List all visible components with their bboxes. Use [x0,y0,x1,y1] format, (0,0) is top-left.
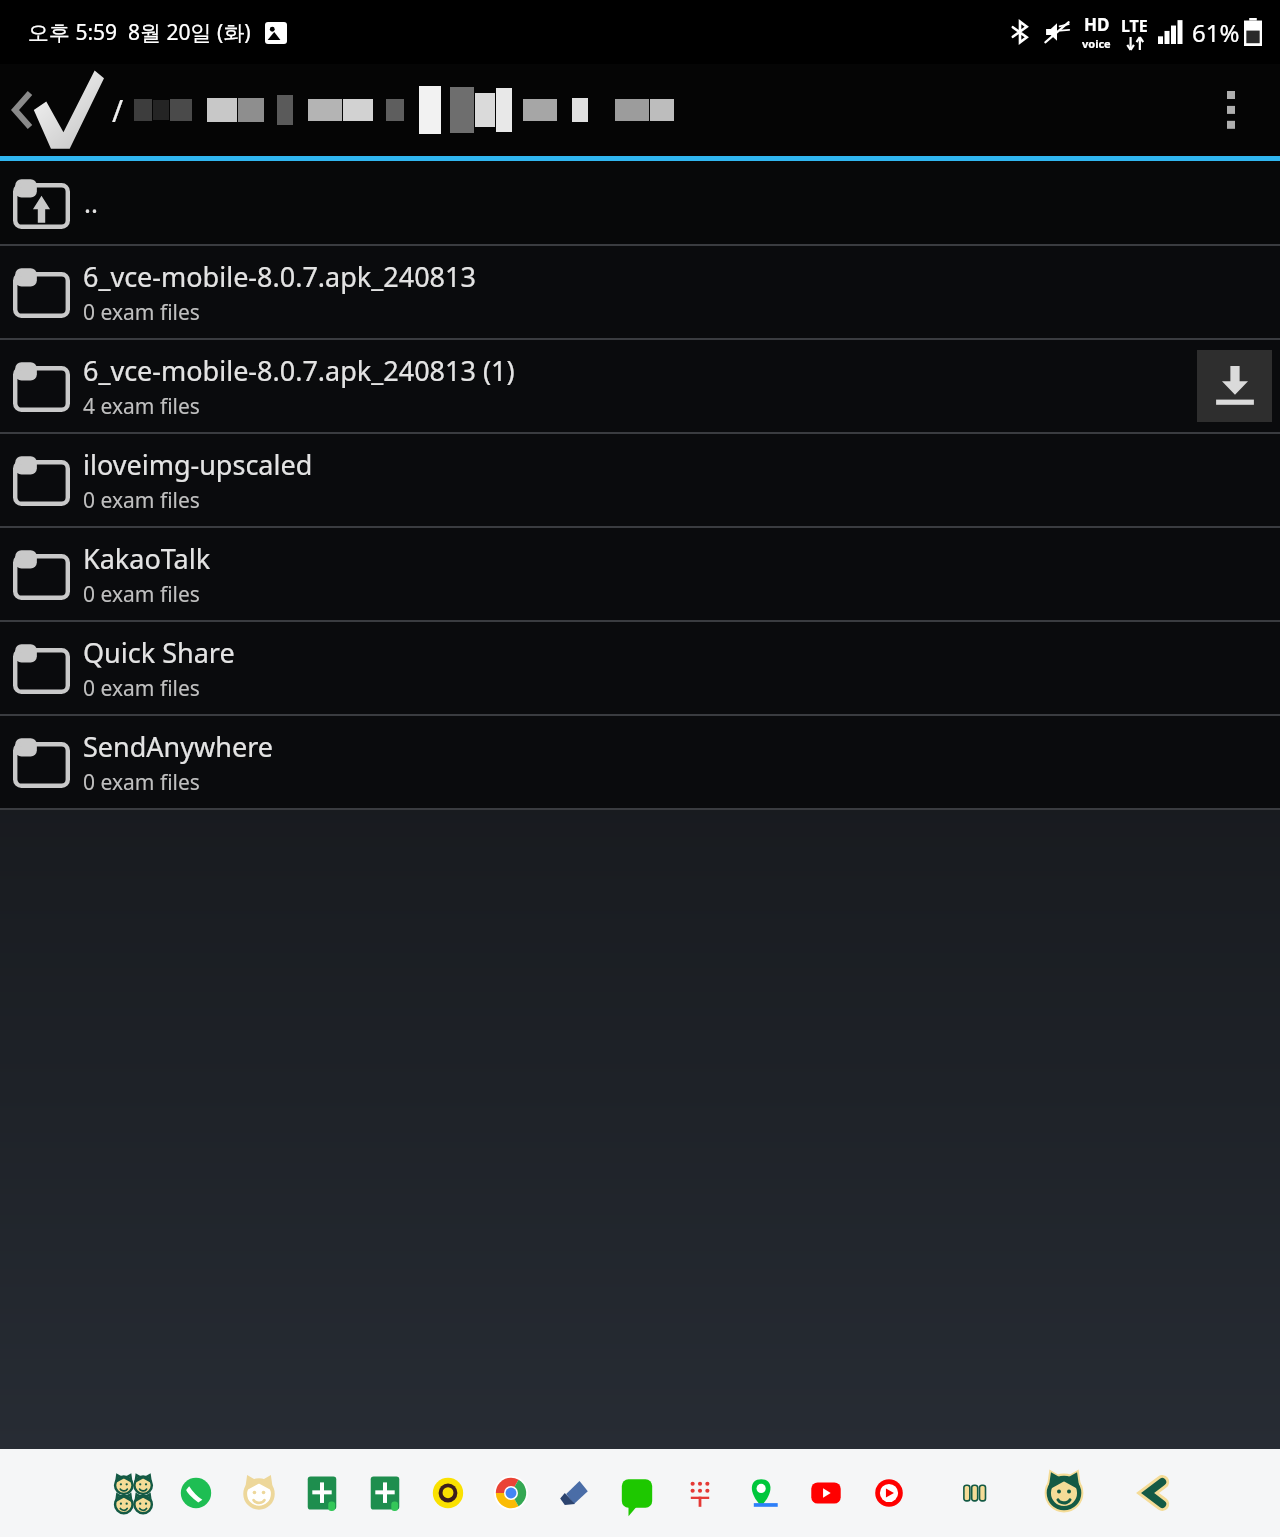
button[interactable]: Download [1197,350,1272,422]
button[interactable]: Naver Map [740,1470,786,1516]
button[interactable]: More options [1208,87,1254,133]
staticText: / [112,90,124,131]
button[interactable]: Back [0,87,46,133]
button[interactable]: Blog [614,1470,660,1516]
staticText: 0 exam files [83,580,200,609]
staticText: 61% [1192,16,1240,49]
button[interactable]: Sheets 2 [362,1470,408,1516]
button[interactable]: KakaoTalk [0,528,1280,620]
button[interactable]: Chrome [488,1470,534,1516]
staticText: 0 exam files [83,768,200,797]
button[interactable]: iloveimg-upscaled [0,434,1280,526]
button[interactable]: Recents [951,1470,997,1516]
button[interactable]: YouTube [803,1470,849,1516]
staticText: 0 exam files [83,674,200,703]
staticText: 6_vce-mobile-8.0.7.apk_240813 (1) [83,352,515,389]
staticText: KakaoTalk [83,540,211,577]
button[interactable]: 6_vce-mobile-8.0.7.apk_240813 (1) [0,340,1280,432]
button[interactable]: Home [1041,1470,1087,1516]
button[interactable]: Cat app [236,1470,282,1516]
staticText: 오후 5:59 8월 20일 (화) [28,18,251,47]
staticText: 0 exam files [83,486,200,515]
button[interactable]: YouTube Music [866,1470,912,1516]
button[interactable]: Folder group [110,1470,156,1516]
staticText: voice [1082,36,1111,51]
staticText: 0 exam files [83,298,200,327]
button[interactable]: Phone [173,1470,219,1516]
staticText: HD [1084,13,1110,36]
staticText: .. [84,185,98,220]
staticText: 6_vce-mobile-8.0.7.apk_240813 [83,258,476,295]
button[interactable]: SendAnywhere [0,716,1280,808]
button[interactable]: Sheets [299,1470,345,1516]
button[interactable]: Drive [551,1470,597,1516]
staticText: LTE [1121,15,1148,37]
button[interactable]: 6_vce-mobile-8.0.7.apk_240813 [0,246,1280,338]
button[interactable]: Band [677,1470,723,1516]
staticText: iloveimg-upscaled [83,446,313,483]
button[interactable]: KakaoTalk [425,1470,471,1516]
staticText: Quick Share [83,634,235,671]
button[interactable]: Back [1131,1470,1177,1516]
button[interactable]: .. [0,161,1280,244]
staticText: 4 exam files [83,392,200,421]
staticText: SendAnywhere [83,728,274,765]
button[interactable]: Quick Share [0,622,1280,714]
